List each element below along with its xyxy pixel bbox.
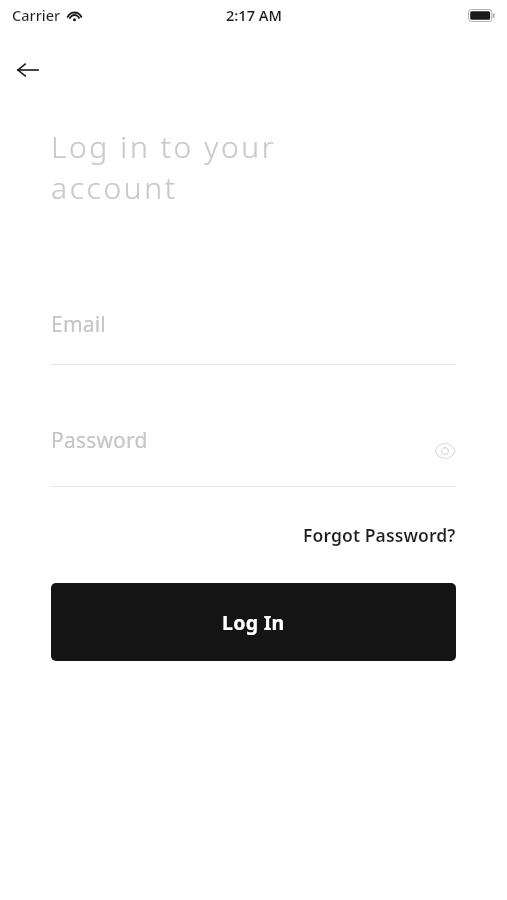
staticText: account — [51, 167, 178, 208]
staticText: Forgot Password? — [303, 523, 456, 547]
button[interactable]: Forgot Password? — [271, 518, 456, 552]
button[interactable]: Email — [51, 310, 456, 365]
button[interactable]: Log In — [51, 583, 456, 661]
button[interactable]: Back — [8, 50, 48, 90]
staticText: Password — [51, 426, 148, 455]
staticText: Carrier — [12, 5, 61, 25]
button[interactable]: Show password — [428, 434, 462, 468]
staticText: 2:17 AM — [226, 5, 282, 25]
button[interactable]: Password — [51, 426, 456, 487]
staticText: Email — [51, 310, 106, 339]
staticText: Log In — [222, 609, 285, 636]
staticText: Log in to your — [51, 126, 277, 167]
